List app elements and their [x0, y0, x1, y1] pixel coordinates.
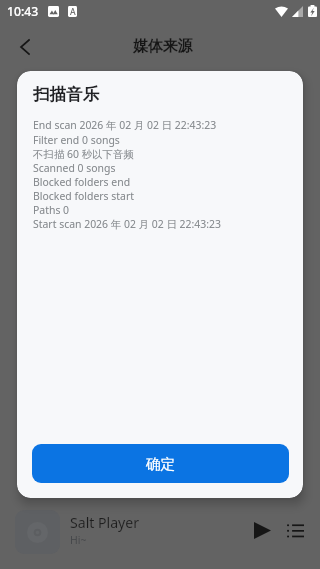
button[interactable]: 确定: [32, 444, 289, 483]
staticText: End scan 2026 年 02 月 02 日 22:43:23 Filte…: [33, 118, 221, 231]
staticText: Hi~: [70, 533, 87, 547]
staticText: Salt Player: [70, 513, 140, 532]
staticText: 媒体来源: [133, 37, 193, 56]
button[interactable]: Play: [246, 514, 278, 546]
button[interactable]: Back: [6, 28, 44, 66]
staticText: A: [70, 6, 76, 17]
staticText: 10:43: [7, 3, 39, 20]
button[interactable]: Playlist: [279, 514, 311, 546]
staticText: 扫描音乐: [33, 84, 100, 105]
staticText: 确定: [146, 455, 176, 473]
